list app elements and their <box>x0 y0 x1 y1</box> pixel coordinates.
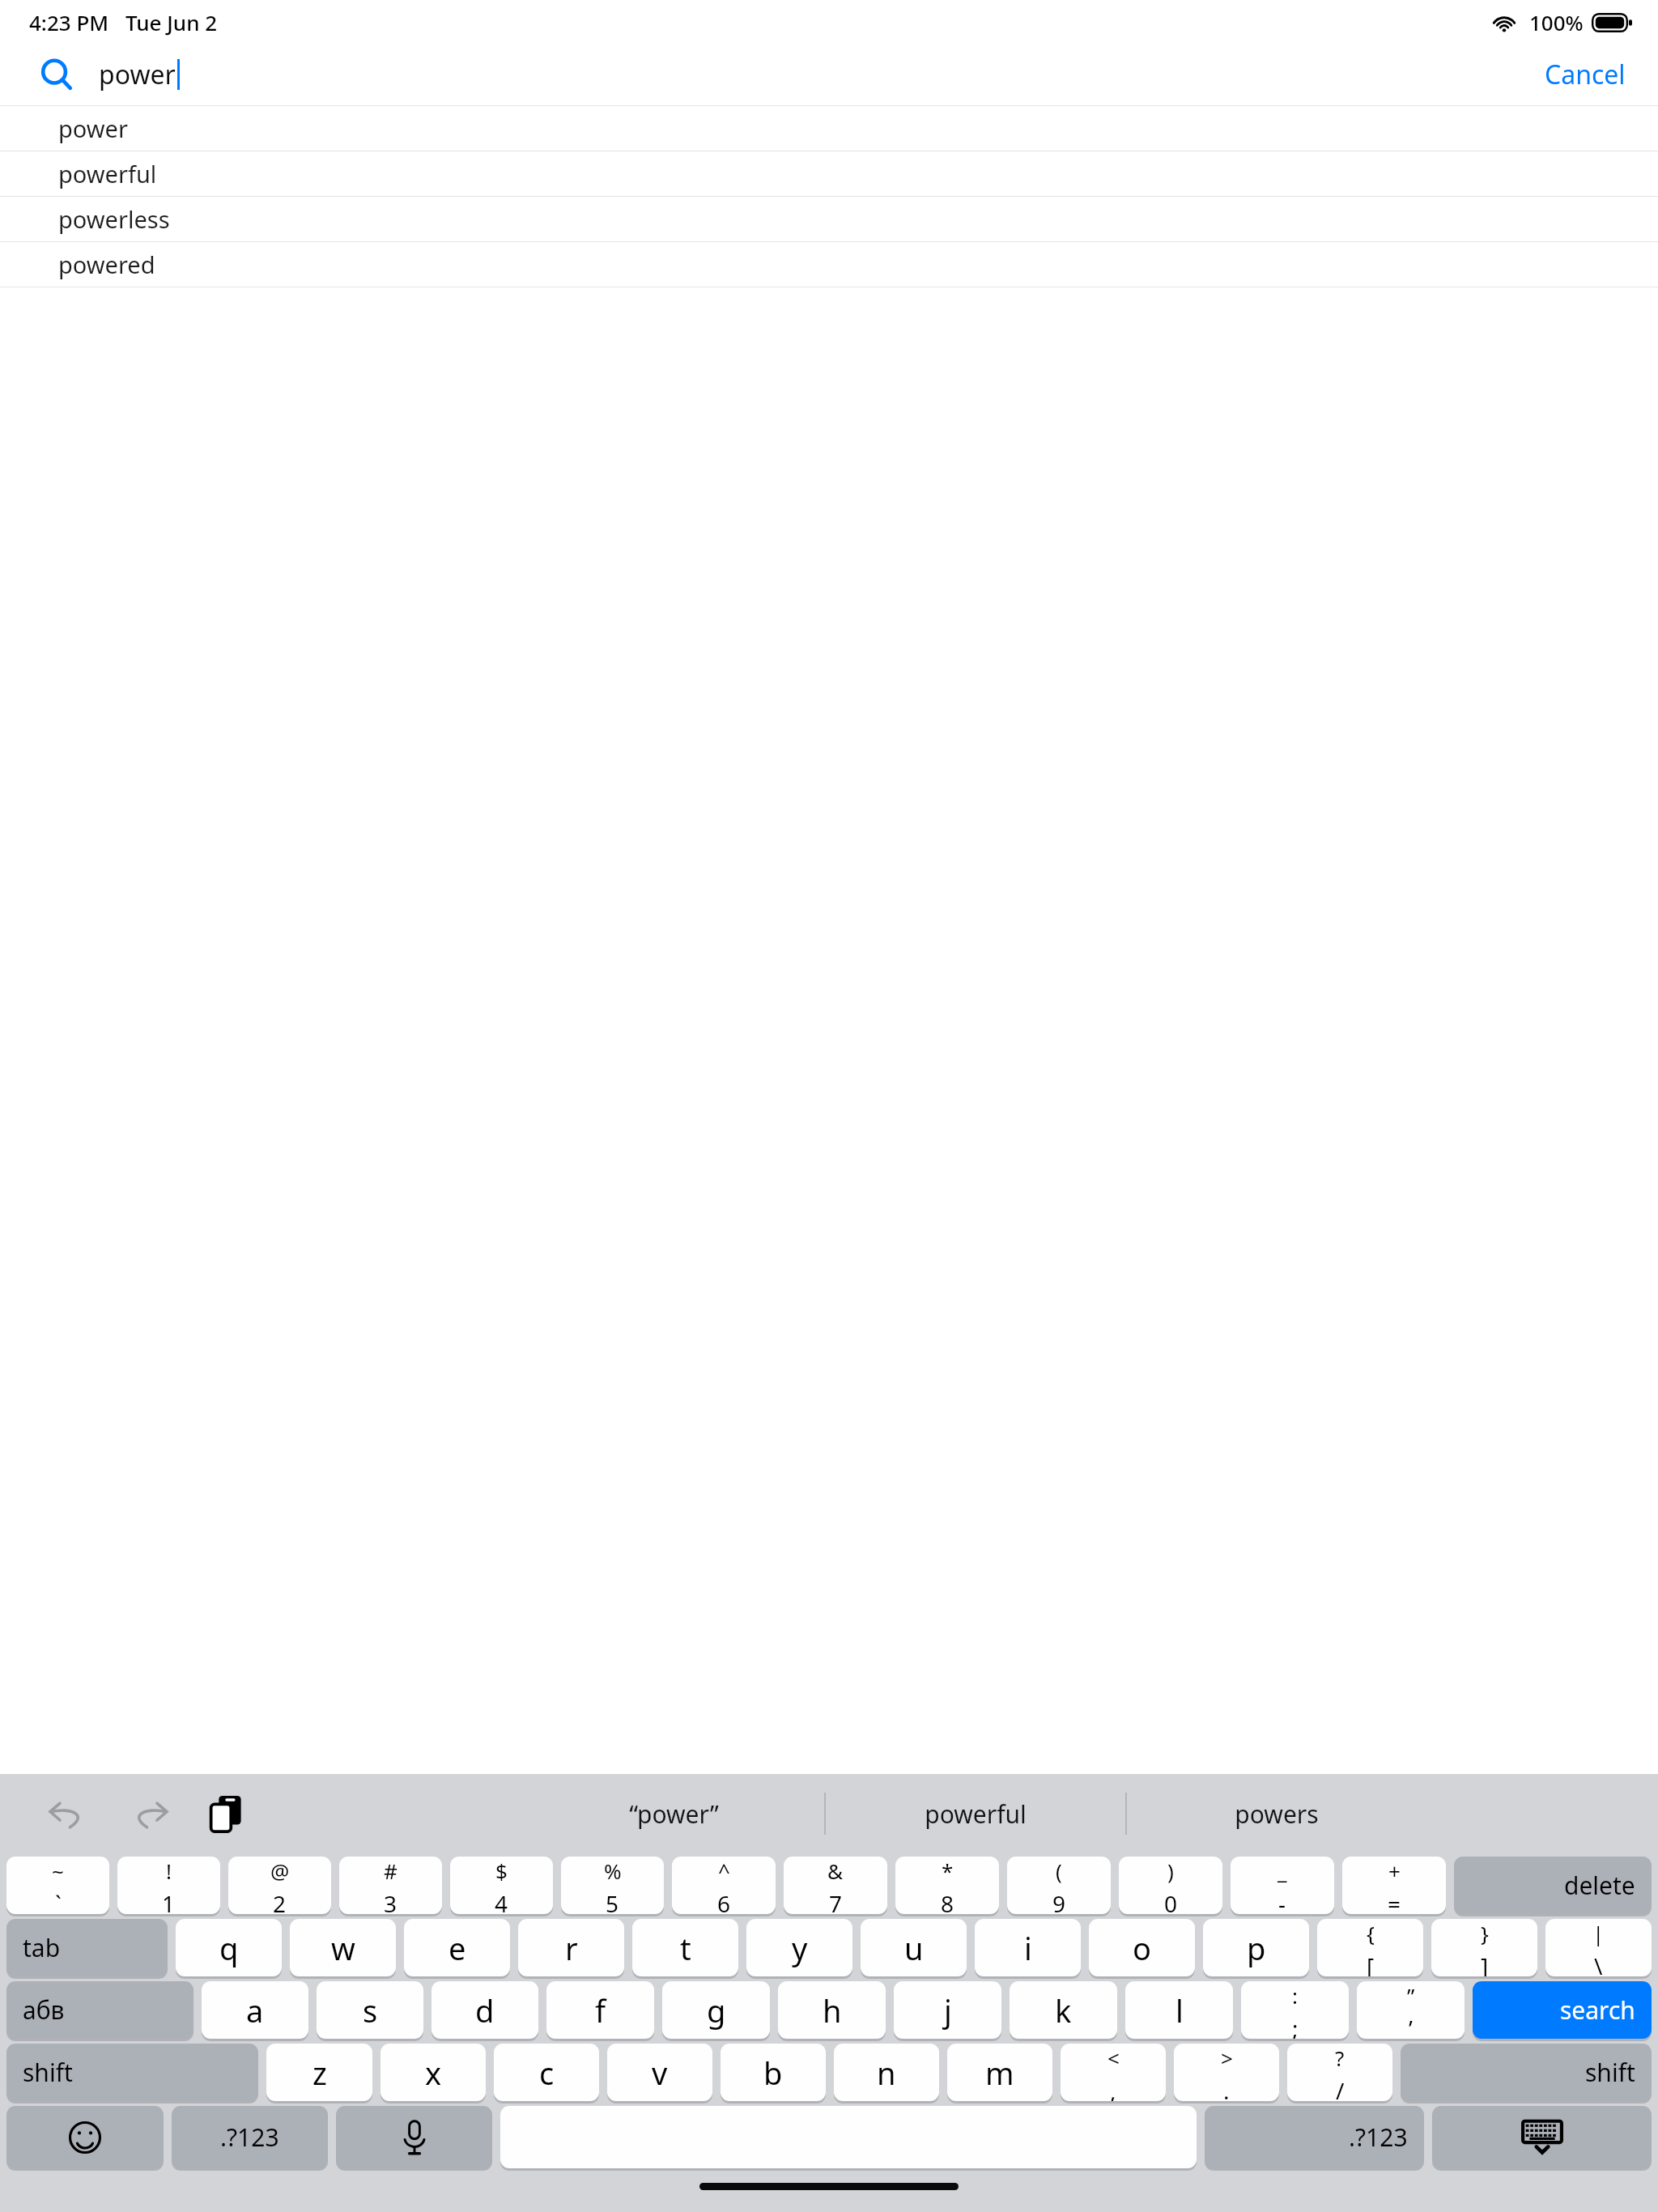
staticText: power <box>58 113 128 144</box>
staticText: h <box>823 1989 842 2031</box>
button[interactable]: e <box>404 1919 510 1976</box>
button[interactable]: & <box>784 1857 887 1914</box>
staticText: c <box>539 2052 555 2094</box>
button[interactable]: s <box>317 1981 423 2039</box>
button[interactable]: d <box>432 1981 538 2039</box>
button[interactable]: powerful <box>826 1774 1125 1853</box>
button[interactable]: ( <box>1007 1857 1111 1914</box>
button[interactable]: абв <box>6 1981 193 2039</box>
staticText: 1 <box>162 1888 176 1914</box>
button[interactable]: Cancel <box>1522 47 1648 102</box>
staticText: g <box>707 1989 726 2031</box>
button[interactable]: .?123 <box>172 2106 328 2168</box>
button[interactable]: m <box>947 2044 1052 2101</box>
staticText: / <box>1336 2075 1345 2101</box>
button[interactable]: _ <box>1231 1857 1334 1914</box>
staticText: 8 <box>941 1888 954 1914</box>
button[interactable]: + <box>1342 1857 1446 1914</box>
staticText: & <box>827 1857 844 1885</box>
button[interactable]: Dictate <box>336 2106 492 2168</box>
button[interactable]: ! <box>117 1857 220 1914</box>
staticText: @ <box>270 1857 290 1885</box>
button[interactable]: Hide keyboard <box>1432 2106 1652 2168</box>
button[interactable]: t <box>632 1919 738 1976</box>
button[interactable]: k <box>1010 1981 1117 2039</box>
button[interactable]: o <box>1089 1919 1195 1976</box>
staticText: 6 <box>717 1888 731 1914</box>
button[interactable]: w <box>290 1919 396 1976</box>
button[interactable]: v <box>607 2044 712 2101</box>
staticText: w <box>331 1927 355 1969</box>
button[interactable]: p <box>1203 1919 1309 1976</box>
button[interactable]: Search <box>36 53 78 96</box>
button[interactable]: $ <box>450 1857 553 1914</box>
staticText: q <box>219 1927 239 1969</box>
button[interactable]: a <box>202 1981 308 2039</box>
button[interactable]: ) <box>1119 1857 1222 1914</box>
button[interactable]: z <box>266 2044 372 2101</box>
button[interactable]: shift <box>1401 2044 1652 2101</box>
button[interactable]: j <box>894 1981 1001 2039</box>
button[interactable]: Undo <box>36 1781 100 1846</box>
staticText: tab <box>23 1931 61 1964</box>
button[interactable]: search <box>1473 1981 1652 2039</box>
button[interactable]: Emoji <box>6 2106 164 2168</box>
button[interactable]: * <box>895 1857 999 1914</box>
button[interactable]: f <box>546 1981 654 2039</box>
staticText: v <box>652 2052 668 2094</box>
button[interactable]: ? <box>1287 2044 1392 2101</box>
staticText: 5 <box>606 1888 619 1914</box>
staticText: b <box>763 2052 783 2094</box>
staticText: ; <box>1292 2013 1299 2039</box>
staticText: 100% <box>1529 8 1584 36</box>
staticText: powerful <box>925 1797 1027 1831</box>
button[interactable]: y <box>746 1919 852 1976</box>
button[interactable]: n <box>834 2044 939 2101</box>
staticText: 4 <box>495 1888 508 1914</box>
button[interactable]: q <box>176 1919 282 1976</box>
button[interactable]: @ <box>228 1857 331 1914</box>
button[interactable]: % <box>561 1857 664 1914</box>
button[interactable]: powers <box>1127 1774 1426 1853</box>
button[interactable]: powered <box>0 242 1658 287</box>
button[interactable]: b <box>721 2044 826 2101</box>
button[interactable]: r <box>518 1919 624 1976</box>
button[interactable]: Paste <box>194 1781 259 1846</box>
button[interactable]: h <box>778 1981 886 2039</box>
button[interactable]: } <box>1431 1919 1537 1976</box>
button[interactable]: | <box>1545 1919 1652 1976</box>
button[interactable]: .?123 <box>1205 2106 1424 2168</box>
staticText: shift <box>1585 2056 1635 2089</box>
button[interactable]: : <box>1241 1981 1349 2039</box>
staticText: * <box>942 1857 954 1885</box>
staticText: search <box>1560 1993 1635 2027</box>
staticText: powerful <box>58 158 157 189</box>
button[interactable]: u <box>861 1919 967 1976</box>
button[interactable]: powerless <box>0 197 1658 241</box>
staticText: e <box>449 1927 466 1969</box>
staticText: powers <box>1235 1797 1319 1831</box>
button[interactable]: { <box>1317 1919 1423 1976</box>
button[interactable]: > <box>1174 2044 1279 2101</box>
button[interactable]: l <box>1125 1981 1233 2039</box>
button[interactable]: shift <box>6 2044 258 2101</box>
staticText: u <box>904 1927 924 1969</box>
button[interactable]: g <box>662 1981 770 2039</box>
staticText: p <box>1247 1927 1266 1969</box>
button[interactable]: ^ <box>672 1857 776 1914</box>
button[interactable]: i <box>975 1919 1081 1976</box>
staticText: ] <box>1481 1950 1489 1976</box>
button[interactable]: delete <box>1454 1857 1652 1914</box>
button[interactable]: ~ <box>6 1857 109 1914</box>
button[interactable]: powerful <box>0 151 1658 196</box>
button[interactable]: # <box>339 1857 442 1914</box>
button[interactable]: Redo <box>117 1781 181 1846</box>
button[interactable]: ” <box>1357 1981 1465 2039</box>
button[interactable]: power <box>0 106 1658 151</box>
button[interactable]: tab <box>6 1919 168 1976</box>
button[interactable]: x <box>380 2044 486 2101</box>
button[interactable]: “power” <box>524 1774 824 1853</box>
button[interactable]: c <box>494 2044 599 2101</box>
button[interactable]: < <box>1061 2044 1166 2101</box>
